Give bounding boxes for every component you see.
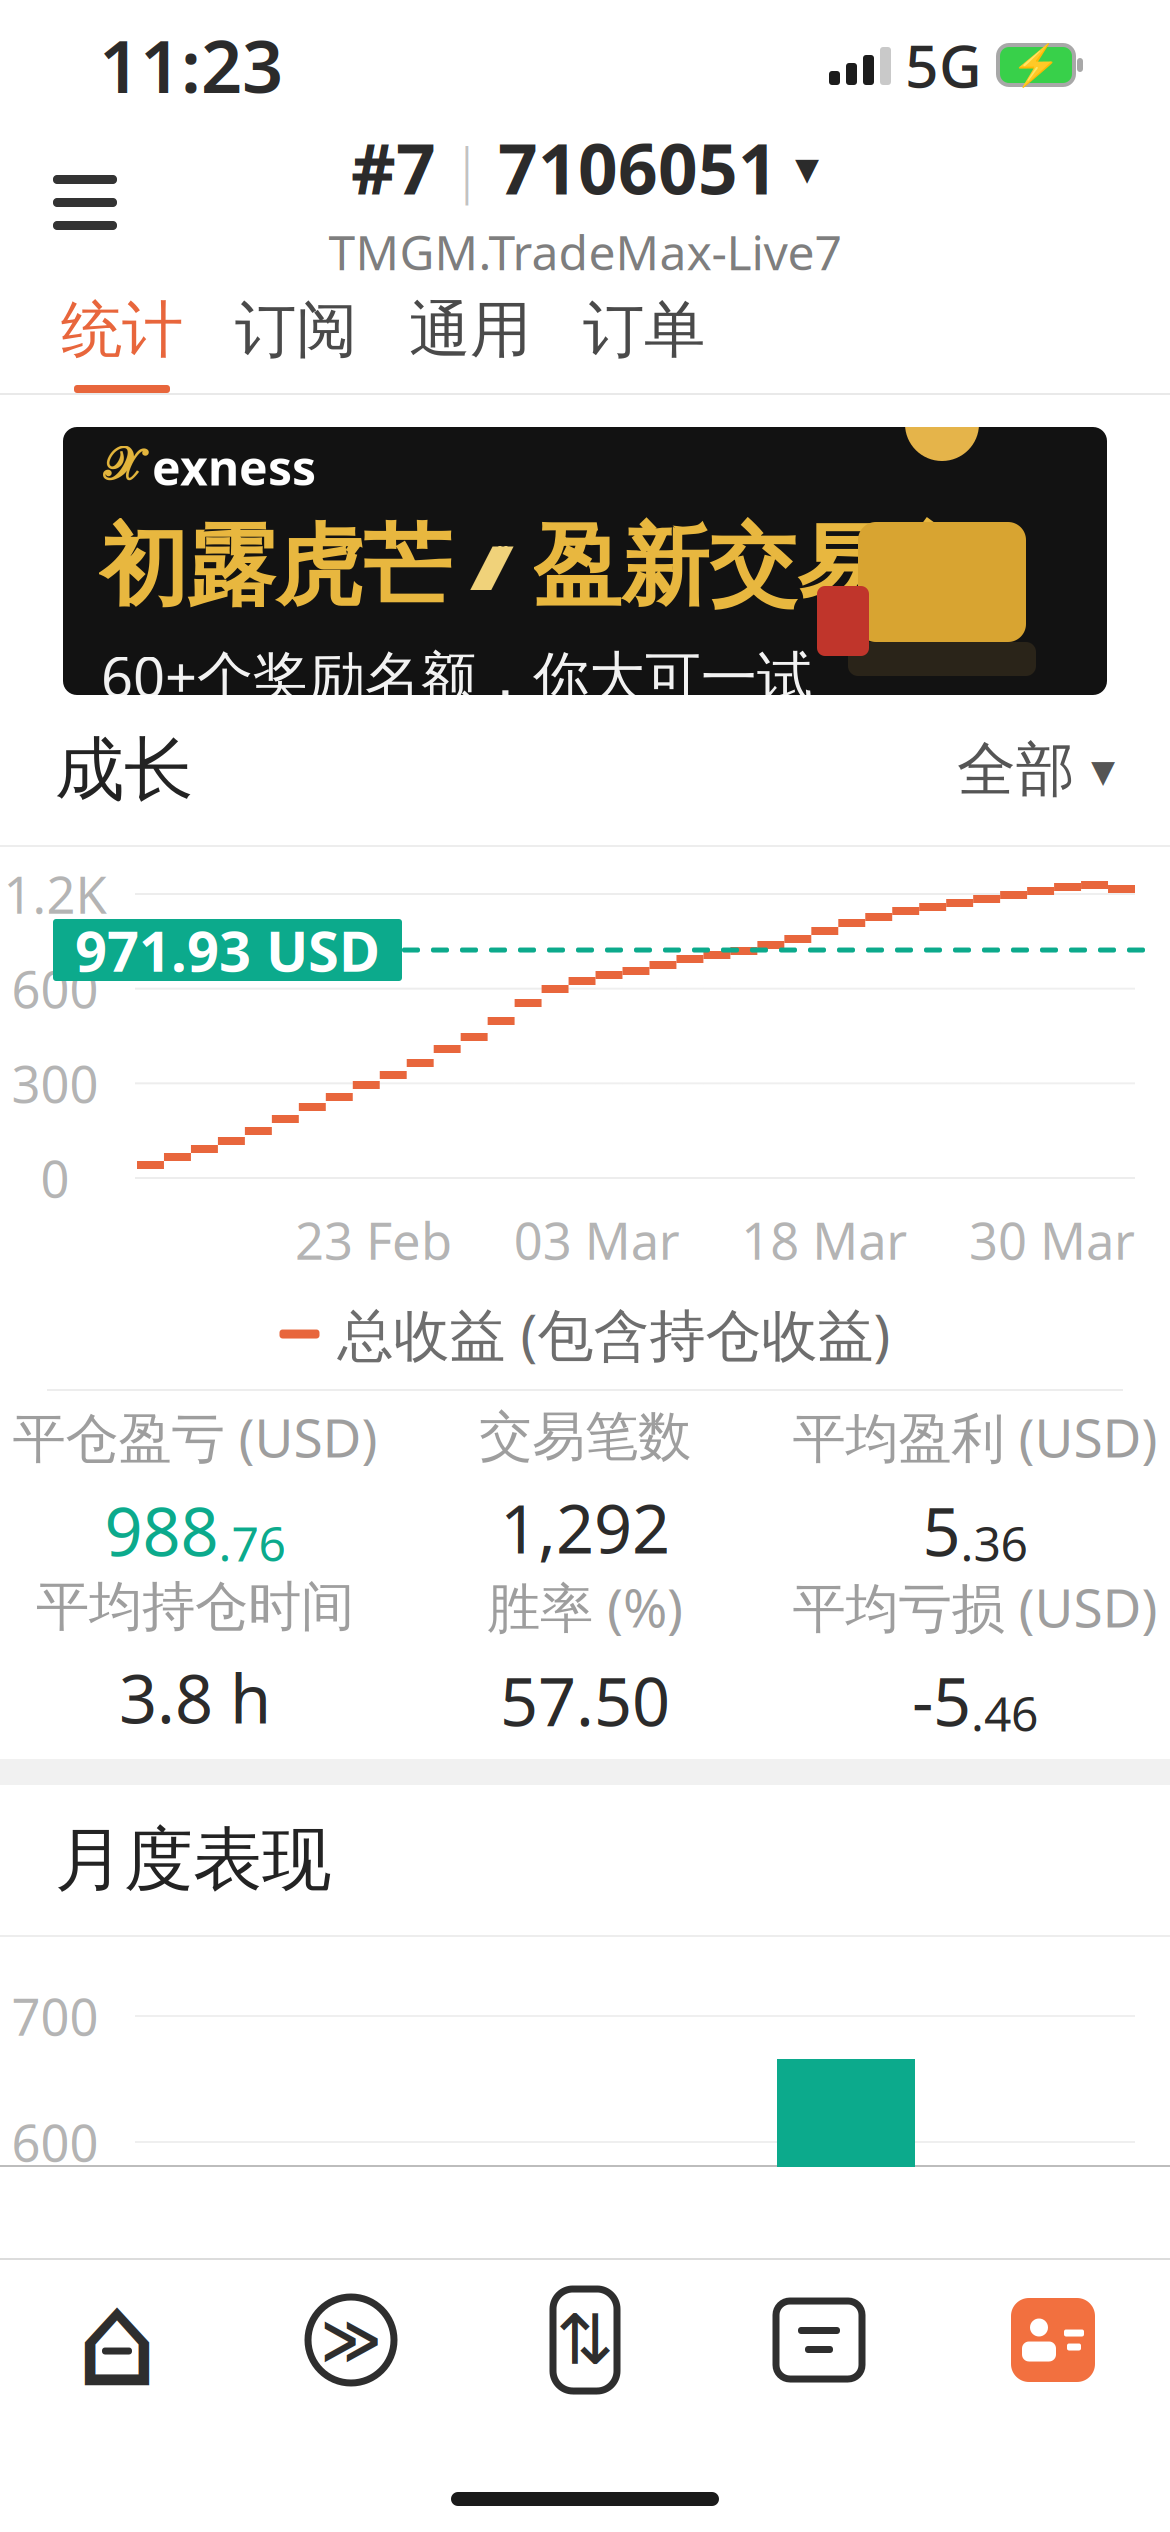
staticText: 盈新交易赛: [533, 513, 973, 621]
button[interactable]: 订阅: [209, 275, 383, 393]
staticText: 订单: [583, 292, 705, 368]
staticText: 03 Mar: [514, 1206, 680, 1274]
staticText: 11:23: [99, 17, 283, 113]
staticText: 总收益 (包含持仓收益): [337, 1297, 890, 1371]
staticText: 平仓盈亏 (USD): [12, 1401, 377, 1472]
staticText: TMGM.TradeMax-Live7: [328, 220, 841, 283]
button[interactable]: #7: [328, 122, 841, 283]
staticText: ⁄⁄⁄: [451, 526, 533, 607]
button[interactable]: 通用: [383, 275, 557, 393]
staticText: |: [436, 129, 498, 207]
staticText: 1.2K: [3, 860, 106, 928]
button[interactable]: Trade: [468, 2260, 702, 2420]
staticText: 700: [11, 1982, 98, 2050]
staticText: 988: [104, 1486, 218, 1575]
staticText: 300: [11, 1050, 98, 1117]
staticText: 1,292: [500, 1483, 670, 1572]
staticText: 30 Mar: [969, 1206, 1135, 1274]
staticText: 平均持仓时间: [36, 1574, 354, 1639]
staticText: .36: [960, 1511, 1027, 1575]
staticText: 3.8 h: [119, 1653, 271, 1742]
staticText: 月度表现: [55, 1817, 331, 1903]
button[interactable]: Signals: [234, 2260, 468, 2420]
staticText: 23 Feb: [295, 1206, 452, 1274]
staticText: 57.50: [500, 1656, 670, 1745]
button[interactable]: Profile: [936, 2260, 1170, 2420]
staticText: 平均盈利 (USD): [792, 1401, 1157, 1472]
staticText: ⇅: [556, 2301, 614, 2379]
staticText: 5G: [905, 26, 982, 104]
staticText: 𝒳: [103, 445, 142, 489]
staticText: 600: [11, 955, 98, 1022]
button[interactable]: 订单: [557, 275, 731, 393]
staticText: 971.93 USD: [75, 913, 380, 987]
staticText: 全部: [957, 734, 1075, 806]
button[interactable]: Home: [0, 2260, 234, 2420]
staticText: 成长: [55, 727, 193, 813]
staticText: ⌂: [75, 2266, 158, 2414]
staticText: ≫: [320, 2307, 381, 2373]
staticText: ▾: [1091, 743, 1115, 797]
staticText: 平均亏损 (USD): [792, 1571, 1157, 1642]
button[interactable]: Menu: [37, 154, 133, 250]
staticText: .46: [971, 1681, 1038, 1745]
staticText: 600: [11, 2108, 98, 2176]
staticText: ▾: [778, 140, 819, 195]
staticText: 5: [922, 1486, 960, 1575]
staticText: #7: [351, 122, 436, 214]
button[interactable]: Messages: [702, 2260, 936, 2420]
staticText: 胜率 (%): [487, 1571, 683, 1642]
staticText: 通用: [409, 292, 531, 368]
button[interactable]: Exness promotion: [0, 395, 1170, 695]
button[interactable]: 全部: [957, 734, 1115, 806]
staticText: -5: [912, 1656, 971, 1745]
staticText: exness: [152, 435, 316, 499]
staticText: 初露虎芒: [99, 513, 451, 621]
staticText: ⚡: [1011, 42, 1061, 88]
staticText: 7106051: [498, 122, 778, 214]
staticText: 60+个奖励名额，你大可一试: [101, 639, 813, 713]
staticText: 交易笔数: [479, 1404, 691, 1469]
staticText: 0: [40, 1144, 69, 1212]
staticText: .76: [218, 1511, 285, 1575]
staticText: 订阅: [235, 292, 357, 368]
staticText: 18 Mar: [741, 1206, 907, 1274]
staticText: 统计: [61, 292, 183, 368]
button[interactable]: 统计: [35, 275, 209, 393]
